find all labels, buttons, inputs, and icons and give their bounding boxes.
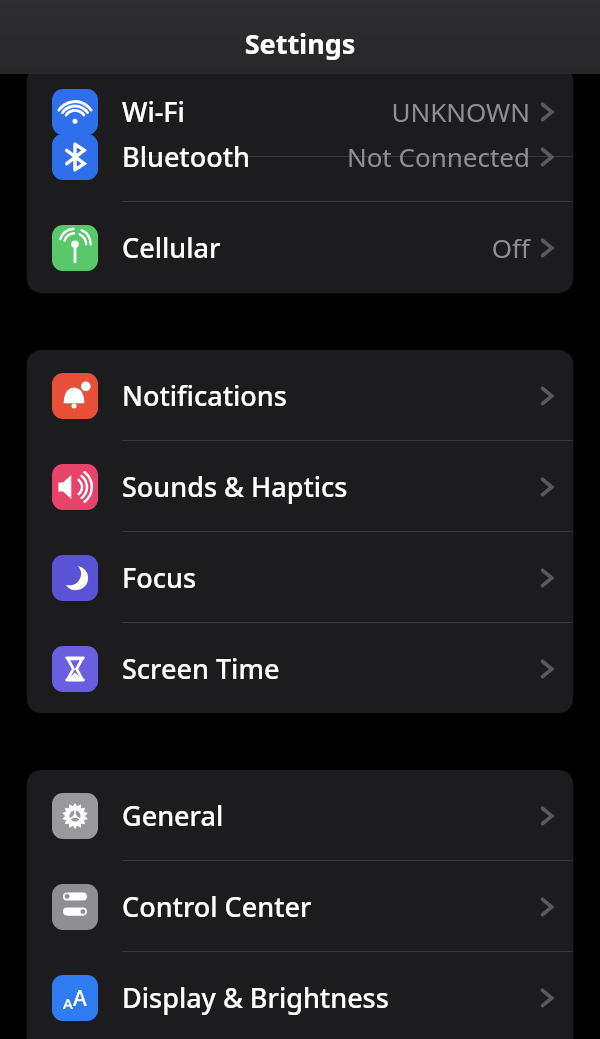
staticText: Focus [122,559,197,596]
staticText: A [63,993,73,1013]
staticText: Cellular [122,229,221,266]
button[interactable]: Wi-Fi [27,66,573,157]
button[interactable]: Cellular [27,202,573,293]
staticText: Screen Time [122,650,280,687]
staticText: Control Center [122,888,312,925]
button[interactable]: Sounds & Haptics [27,441,573,532]
button[interactable]: Screen Time [27,623,573,714]
staticText: Sounds & Haptics [122,468,348,505]
staticText: General [122,797,224,834]
staticText: A [73,984,87,1013]
staticText: Display & Brightness [122,979,389,1016]
button[interactable]: General [27,770,573,861]
staticText: Notifications [122,377,287,414]
button[interactable]: Focus [27,532,573,623]
staticText: UNKNOWN [391,94,530,129]
button[interactable]: Bluetooth [27,111,573,202]
button[interactable]: A [27,952,573,1039]
staticText: Settings [0,25,600,62]
staticText: Not Connected [346,139,530,174]
staticText: Wi-Fi [122,93,185,130]
button[interactable]: Control Center [27,861,573,952]
staticText: Bluetooth [122,138,250,175]
staticText: Off [491,230,530,265]
button[interactable]: Notifications [27,350,573,441]
